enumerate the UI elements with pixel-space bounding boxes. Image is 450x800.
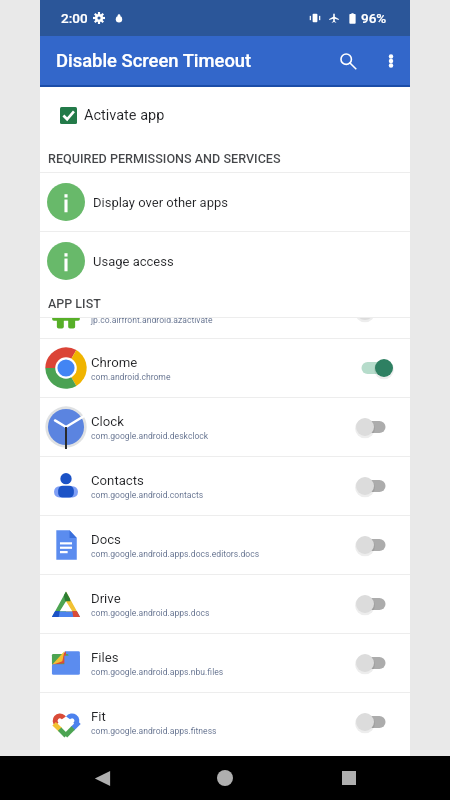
staticText: jp.co.airfront.android.azactivate [91, 318, 213, 325]
staticText: APP LIST [48, 296, 101, 311]
staticText: Fit [91, 709, 106, 724]
staticText: com.google.android.apps.nbu.files [91, 667, 224, 677]
button[interactable]: Display over other apps [40, 173, 410, 231]
button[interactable]: AZ Activate [40, 318, 410, 338]
button[interactable]: Chrome [40, 339, 410, 397]
staticText: 96% [361, 10, 387, 26]
button[interactable]: Toggle [369, 350, 408, 386]
button[interactable]: Usage access [40, 232, 410, 290]
button[interactable]: Recents [327, 756, 371, 800]
button[interactable]: Search [324, 37, 372, 85]
button[interactable]: Files [40, 634, 410, 692]
staticText: Display over other apps [93, 195, 229, 210]
staticText: com.google.android.apps.docs [91, 608, 210, 618]
button[interactable]: Toggle [369, 586, 408, 622]
staticText: 2:00 [61, 10, 88, 26]
staticText: com.android.chrome [91, 372, 171, 382]
button[interactable]: Toggle [369, 468, 408, 504]
button[interactable]: Docs [40, 516, 410, 574]
staticText: Chrome [91, 355, 138, 370]
staticText: Files [91, 650, 119, 665]
button[interactable]: Fit [40, 693, 410, 751]
button[interactable]: Toggle [369, 527, 408, 563]
button[interactable]: Toggle [369, 409, 408, 445]
staticText: Usage access [93, 254, 174, 269]
button[interactable]: Clock [40, 398, 410, 456]
button[interactable]: Back [80, 756, 124, 800]
staticText: Activate app [84, 107, 165, 124]
staticText: Docs [91, 532, 121, 547]
button[interactable]: Toggle [369, 704, 408, 740]
staticText: Drive [91, 591, 121, 606]
button[interactable]: Toggle [369, 645, 408, 681]
staticText: Clock [91, 414, 124, 429]
button[interactable]: Activate app [40, 87, 410, 144]
staticText: com.google.android.deskclock [91, 431, 209, 441]
staticText: REQUIRED PERMISSIONS AND SERVICES [48, 151, 281, 166]
staticText: Disable Screen Timeout [56, 50, 252, 72]
staticText: com.google.android.apps.fitness [91, 726, 217, 736]
button[interactable]: Contacts [40, 457, 410, 515]
staticText: com.google.android.apps.docs.editors.doc… [91, 549, 260, 559]
staticText: com.google.android.contacts [91, 490, 204, 500]
button[interactable]: Drive [40, 575, 410, 633]
button[interactable]: Home [203, 756, 247, 800]
staticText: Contacts [91, 473, 144, 488]
button[interactable]: More options [372, 42, 410, 80]
